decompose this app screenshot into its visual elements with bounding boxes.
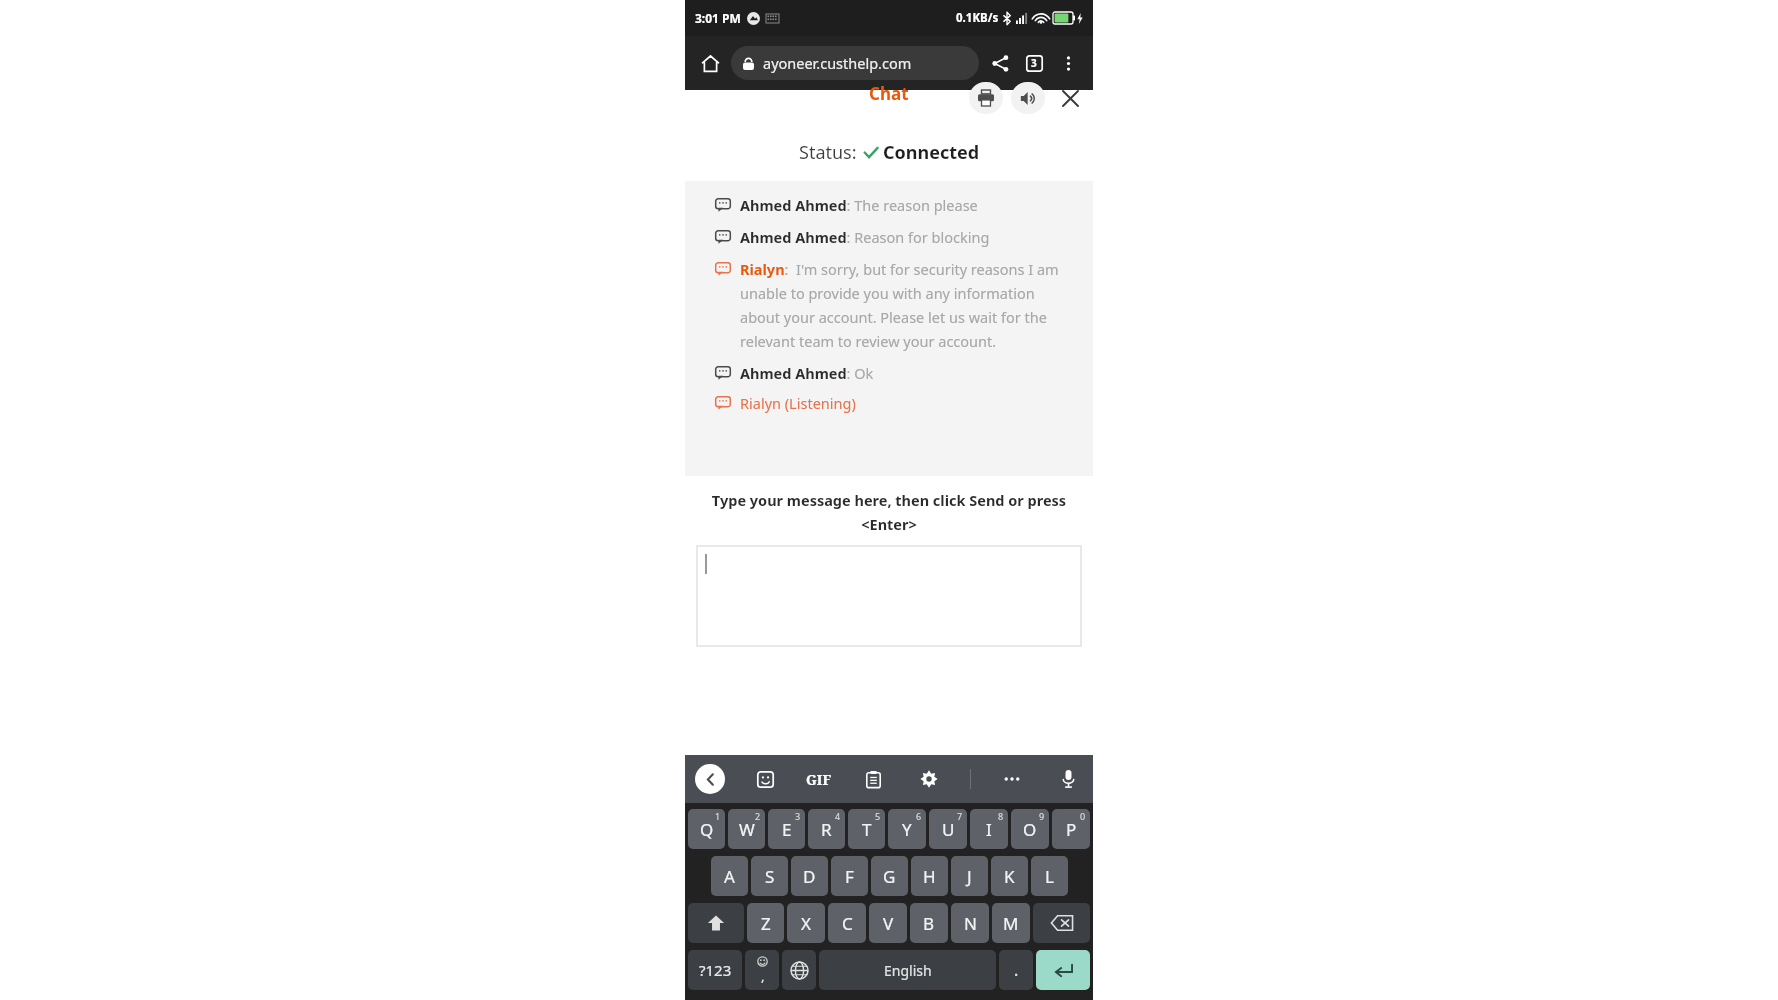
staticText: ayoneer.custhelp.com — [763, 53, 912, 73]
button[interactable]: P — [1052, 809, 1090, 849]
button[interactable]: Rialyn (Listening) — [715, 393, 856, 413]
button[interactable]: M — [992, 903, 1030, 943]
staticText: Q — [700, 818, 714, 841]
button[interactable]: Backspace — [1033, 903, 1090, 943]
button[interactable]: G — [871, 856, 908, 896]
button[interactable]: ?123 — [688, 950, 742, 990]
staticText: B — [923, 912, 935, 935]
staticText: 8 — [998, 810, 1004, 822]
staticText: 3 — [795, 810, 801, 822]
staticText: Z — [761, 912, 771, 935]
staticText: H — [923, 865, 936, 888]
button[interactable]: H — [911, 856, 948, 896]
staticText: O — [1023, 818, 1037, 841]
button[interactable]: Z — [747, 903, 784, 943]
staticText: Rialyn: I'm sorry, but for security reas… — [740, 259, 1077, 351]
button[interactable]: Ahmed Ahmed: The reason please — [715, 195, 1077, 215]
button[interactable]: Clipboard — [858, 764, 888, 794]
button[interactable]: ayoneer.custhelp.com — [731, 46, 979, 80]
button[interactable]: R — [808, 809, 845, 849]
staticText: 9 — [1039, 810, 1045, 822]
button[interactable] — [697, 546, 1081, 646]
button[interactable]: A — [711, 856, 748, 896]
button[interactable]: Ahmed Ahmed: Ok — [715, 363, 1077, 383]
staticText: Status: — [799, 140, 857, 165]
button[interactable]: B — [910, 903, 948, 943]
button[interactable]: Shift — [688, 903, 744, 943]
staticText: 6 — [916, 810, 922, 822]
staticText: 1 — [715, 810, 721, 822]
button[interactable]: N — [951, 903, 989, 943]
button[interactable]: U — [929, 809, 967, 849]
staticText: F — [845, 865, 854, 888]
button[interactable]: GIF — [806, 764, 832, 794]
button[interactable]: S — [751, 856, 788, 896]
staticText: D — [803, 865, 816, 888]
staticText: E — [782, 818, 792, 841]
button[interactable]: E — [768, 809, 805, 849]
button[interactable]: Emoji and comma — [745, 950, 779, 990]
button[interactable]: More — [997, 764, 1027, 794]
staticText: C — [842, 912, 853, 935]
button[interactable]: F — [831, 856, 868, 896]
button[interactable]: Share — [983, 46, 1017, 80]
button[interactable]: Rialyn: I'm sorry, but for security reas… — [715, 259, 1077, 351]
staticText: 0 — [1080, 810, 1086, 822]
button[interactable]: D — [791, 856, 828, 896]
button[interactable]: Back — [695, 764, 725, 794]
staticText: L — [1045, 865, 1054, 888]
staticText: R — [821, 818, 832, 841]
button[interactable]: K — [991, 856, 1028, 896]
button[interactable]: Tabs — [1017, 46, 1051, 80]
button[interactable]: More options — [1051, 46, 1085, 80]
button[interactable]: Sound — [1011, 82, 1045, 114]
staticText: Type your message here, then click Send … — [701, 490, 1077, 534]
staticText: N — [964, 912, 977, 935]
staticText: Ahmed Ahmed: Reason for blocking — [740, 227, 990, 247]
button[interactable]: J — [951, 856, 988, 896]
staticText: W — [739, 818, 755, 841]
button[interactable]: Voice input — [1053, 764, 1083, 794]
button[interactable]: W — [728, 809, 765, 849]
staticText: 2 — [755, 810, 761, 822]
button[interactable]: V — [869, 903, 907, 943]
staticText: S — [765, 865, 775, 888]
staticText: GIF — [806, 770, 832, 789]
button[interactable]: C — [828, 903, 866, 943]
staticText: K — [1004, 865, 1015, 888]
staticText: 7 — [957, 810, 963, 822]
button[interactable]: Ahmed Ahmed: Reason for blocking — [715, 227, 1077, 247]
button[interactable]: Enter — [1036, 950, 1090, 990]
staticText: 3:01 PM — [695, 10, 741, 26]
staticText: X — [801, 912, 811, 935]
button[interactable]: L — [1031, 856, 1068, 896]
staticText: English — [884, 961, 932, 980]
button[interactable]: O — [1011, 809, 1049, 849]
button[interactable]: Y — [888, 809, 926, 849]
button[interactable]: Settings — [914, 764, 944, 794]
staticText: G — [883, 865, 896, 888]
staticText: Chat — [869, 82, 909, 105]
staticText: I — [986, 818, 992, 841]
staticText: , — [761, 967, 765, 985]
button[interactable]: Close — [1053, 82, 1087, 114]
staticText: 3 — [1031, 56, 1037, 70]
button[interactable]: T — [848, 809, 885, 849]
button[interactable]: X — [787, 903, 825, 943]
staticText: M — [1003, 912, 1019, 935]
button[interactable]: . — [999, 950, 1033, 990]
button[interactable]: Change language — [782, 950, 816, 990]
staticText: U — [942, 818, 955, 841]
staticText: Connected — [883, 140, 980, 165]
staticText: J — [967, 865, 972, 888]
staticText: P — [1066, 818, 1077, 841]
staticText: Y — [902, 818, 912, 841]
button[interactable]: English — [819, 950, 996, 990]
button[interactable]: Print — [969, 82, 1003, 114]
staticText: T — [862, 818, 872, 841]
button[interactable]: Stickers — [750, 764, 780, 794]
staticText: A — [724, 865, 735, 888]
button[interactable]: I — [970, 809, 1008, 849]
button[interactable]: Q — [688, 809, 725, 849]
button[interactable]: Home — [693, 46, 727, 80]
